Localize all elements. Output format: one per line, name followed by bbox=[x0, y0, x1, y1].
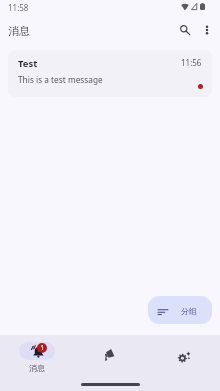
button[interactable]: Search bbox=[169, 17, 195, 43]
staticText: 消息 bbox=[8, 24, 30, 38]
button[interactable]: Settings bbox=[147, 348, 220, 366]
staticText: 分组 bbox=[181, 306, 197, 316]
button[interactable]: 分组 bbox=[148, 296, 212, 324]
button[interactable]: More options bbox=[195, 17, 220, 43]
button[interactable]: Test bbox=[8, 50, 212, 97]
staticText: 11:56 bbox=[181, 57, 202, 68]
button[interactable]: 1 bbox=[0, 342, 74, 373]
button[interactable]: Announcements bbox=[74, 348, 147, 366]
staticText: Test bbox=[18, 57, 38, 70]
staticText: This is a test message bbox=[18, 74, 103, 85]
staticText: 消息 bbox=[29, 363, 45, 373]
staticText: 11:58 bbox=[8, 2, 29, 13]
staticText: 1 bbox=[40, 343, 45, 353]
